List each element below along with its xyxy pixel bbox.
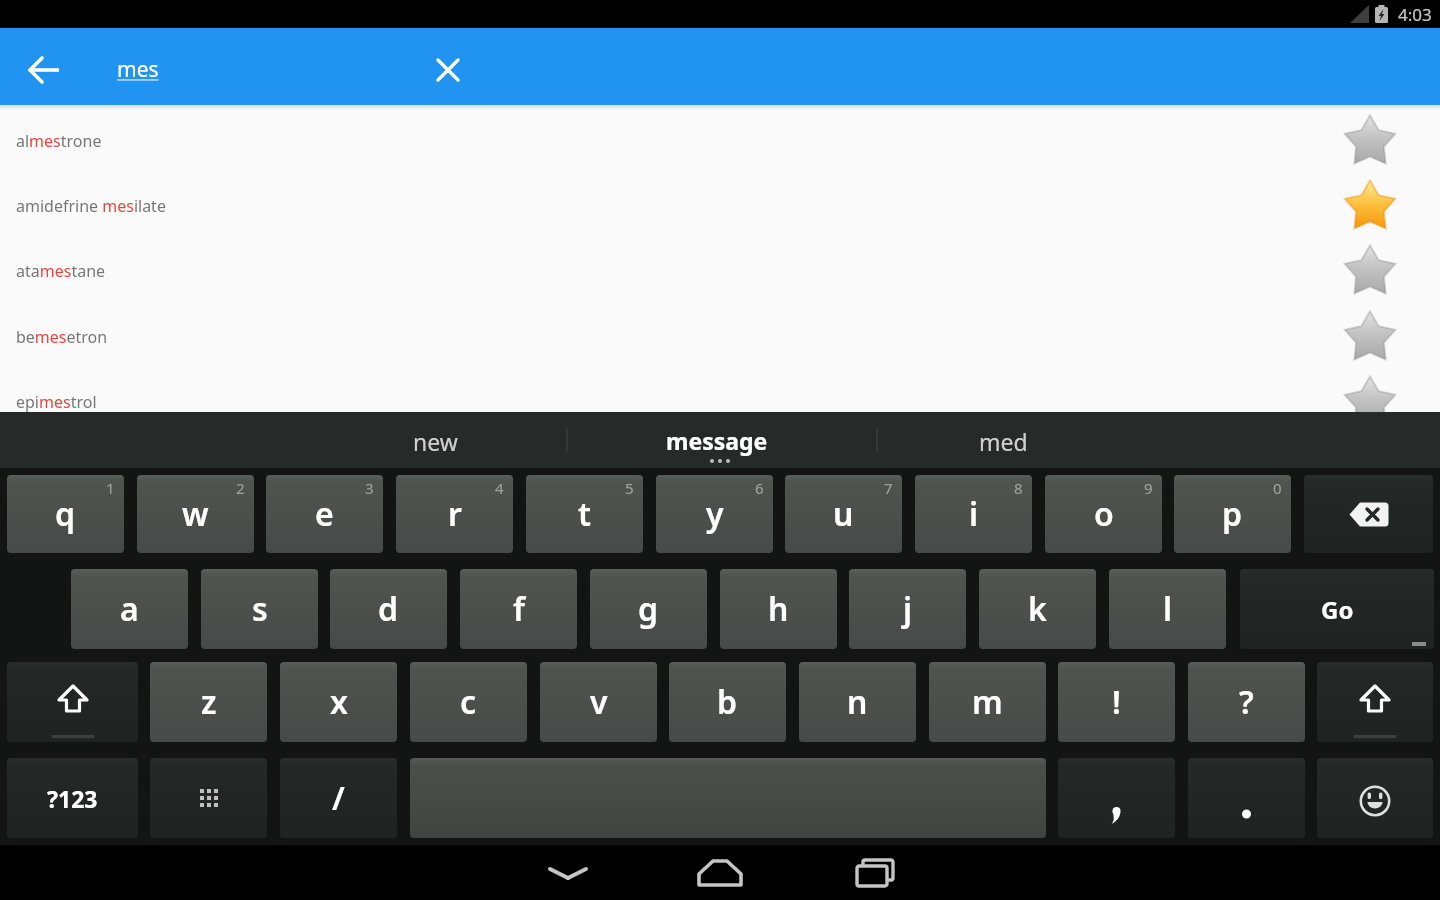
button[interactable]: c <box>410 662 527 742</box>
staticText: mes <box>117 55 159 84</box>
staticText: z <box>201 680 217 724</box>
button[interactable]: l <box>1109 569 1226 649</box>
staticText: j <box>903 587 913 631</box>
staticText: epimestrol <box>16 391 97 412</box>
staticText: / <box>332 776 345 820</box>
staticText: a <box>120 587 139 631</box>
button[interactable]: atamestane <box>0 238 1440 304</box>
button[interactable]: almestrone <box>0 108 1440 174</box>
staticText: f <box>513 587 525 631</box>
button[interactable]: a <box>71 569 188 649</box>
staticText: u <box>833 492 854 536</box>
staticText: m <box>972 680 1003 724</box>
staticText: g <box>638 587 659 631</box>
staticText: o <box>1094 492 1114 536</box>
staticText: p <box>1222 492 1243 536</box>
button[interactable]: y <box>656 475 773 553</box>
button[interactable]: u <box>785 475 902 553</box>
staticText: atamestane <box>16 260 106 282</box>
button[interactable]: e <box>266 475 383 553</box>
button[interactable] <box>1341 177 1399 235</box>
button[interactable]: / <box>280 758 397 838</box>
staticText: n <box>847 680 868 724</box>
staticText: 0 <box>1273 478 1282 498</box>
button[interactable] <box>13 42 77 98</box>
staticText: 9 <box>1144 478 1153 498</box>
button[interactable] <box>7 662 138 742</box>
button[interactable]: w <box>137 475 254 553</box>
staticText: h <box>768 587 789 631</box>
staticText: bemesetron <box>16 326 108 348</box>
button[interactable]: Go <box>1240 569 1434 649</box>
staticText: w <box>182 492 209 536</box>
button[interactable]: q <box>7 475 124 553</box>
staticText: e <box>315 492 334 536</box>
button[interactable] <box>1341 242 1399 300</box>
button[interactable] <box>1058 758 1175 838</box>
staticText: i <box>969 492 979 536</box>
staticText: 2 <box>236 478 245 498</box>
button[interactable]: p <box>1174 475 1291 553</box>
button[interactable]: j <box>849 569 966 649</box>
button[interactable] <box>1341 112 1399 170</box>
staticText: message <box>666 425 768 456</box>
button[interactable] <box>1188 758 1305 838</box>
staticText: 1 <box>106 478 115 498</box>
button[interactable]: ? <box>1188 662 1305 742</box>
button[interactable] <box>825 845 925 900</box>
staticText: 4:03 <box>1398 3 1432 26</box>
button[interactable]: g <box>590 569 707 649</box>
button[interactable]: v <box>540 662 657 742</box>
staticText: x <box>330 680 348 724</box>
button[interactable]: m <box>929 662 1046 742</box>
staticText: t <box>578 492 591 536</box>
staticText: k <box>1028 587 1047 631</box>
button[interactable]: x <box>280 662 397 742</box>
button[interactable] <box>416 42 480 98</box>
button[interactable]: ! <box>1058 662 1175 742</box>
staticText: 8 <box>1014 478 1023 498</box>
button[interactable]: k <box>979 569 1096 649</box>
staticText: amidefrine mesilate <box>16 195 166 217</box>
staticText: l <box>1163 587 1173 631</box>
staticText: v <box>590 680 608 724</box>
button[interactable]: o <box>1045 475 1162 553</box>
button[interactable] <box>410 758 1046 838</box>
button[interactable] <box>1317 758 1433 838</box>
button[interactable] <box>1317 662 1433 742</box>
button[interactable]: ?123 <box>7 758 138 838</box>
staticText: med <box>979 426 1028 457</box>
staticText: 5 <box>625 478 634 498</box>
button[interactable]: h <box>720 569 837 649</box>
staticText: q <box>55 492 76 536</box>
staticText: s <box>252 587 268 631</box>
button[interactable]: n <box>799 662 916 742</box>
button[interactable]: amidefrine mesilate <box>0 173 1440 239</box>
staticText: almestrone <box>16 130 102 152</box>
staticText: c <box>460 680 477 724</box>
staticText: y <box>706 492 724 536</box>
button[interactable]: bemesetron <box>0 304 1440 370</box>
staticText: new <box>413 426 458 457</box>
staticText: Go <box>1321 593 1354 626</box>
button[interactable]: s <box>201 569 318 649</box>
staticText: 6 <box>755 478 764 498</box>
button[interactable]: i <box>915 475 1032 553</box>
staticText: b <box>717 680 738 724</box>
button[interactable] <box>1304 475 1433 553</box>
button[interactable]: r <box>396 475 513 553</box>
staticText: r <box>448 492 462 536</box>
button[interactable]: b <box>669 662 786 742</box>
button[interactable]: f <box>460 569 577 649</box>
button[interactable]: d <box>330 569 447 649</box>
staticText: ! <box>1112 680 1121 724</box>
button[interactable] <box>150 758 267 838</box>
button[interactable] <box>670 845 770 900</box>
staticText: 3 <box>365 478 374 498</box>
button[interactable]: z <box>150 662 267 742</box>
button[interactable]: t <box>526 475 643 553</box>
button[interactable] <box>1341 308 1399 366</box>
button[interactable] <box>518 845 618 900</box>
button[interactable]: epimestrol <box>0 369 1440 412</box>
button[interactable] <box>1341 373 1399 412</box>
